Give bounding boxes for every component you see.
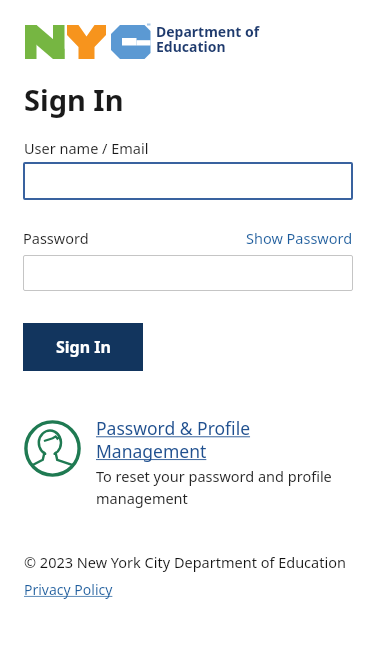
- staticText: © 2023 New York City Department of Educa…: [24, 552, 346, 572]
- staticText: User name / Email: [24, 138, 149, 158]
- staticText: Sign In: [56, 336, 111, 358]
- button[interactable]: Sign In: [23, 323, 143, 371]
- staticText: To reset your password and profile manag…: [96, 466, 332, 508]
- staticText: Password: [23, 228, 89, 248]
- button[interactable]: [23, 255, 353, 291]
- staticText: Sign In: [24, 80, 124, 119]
- button[interactable]: Password & Profile Management: [96, 416, 251, 463]
- button[interactable]: [23, 162, 353, 200]
- button[interactable]: Privacy Policy: [24, 580, 113, 599]
- staticText: Department of Education: [156, 22, 260, 56]
- button[interactable]: Show Password: [246, 228, 353, 248]
